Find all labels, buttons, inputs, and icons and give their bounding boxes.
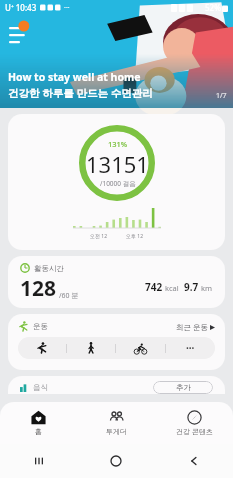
button[interactable]: 홈 — [0, 402, 77, 444]
staticText: 131% — [108, 139, 128, 149]
button[interactable]: 건강 콘텐츠 — [155, 402, 233, 444]
staticText: ··· — [64, 3, 70, 13]
staticText: 13151 — [86, 149, 149, 179]
button[interactable]: Back — [155, 444, 233, 478]
button[interactable]: Walk — [67, 337, 115, 359]
staticText: 건강 콘텐츠 — [176, 427, 213, 437]
staticText: kcal — [165, 283, 179, 293]
button[interactable]: Recents — [0, 444, 77, 478]
staticText: 오전 12 — [90, 233, 108, 240]
staticText: 1/7 — [216, 91, 227, 101]
button[interactable]: Cycle — [116, 337, 165, 359]
staticText: 최근 운동 — [176, 322, 208, 332]
staticText: 건강한 하루를 만드는 수면관리 — [8, 86, 153, 100]
staticText: 128 — [20, 274, 57, 303]
button[interactable]: 최근 운동 — [176, 322, 215, 332]
staticText: 투게더 — [106, 427, 127, 436]
staticText: 운동 — [33, 322, 48, 331]
button[interactable]: 추가 — [153, 381, 213, 394]
staticText: 742 — [145, 280, 163, 294]
button[interactable]: More — [166, 337, 215, 359]
staticText: 홈 — [35, 427, 42, 436]
button[interactable]: Home — [77, 444, 155, 478]
button[interactable]: 운동 — [8, 314, 225, 370]
staticText: 오후 12 — [126, 233, 144, 240]
staticText: U⁺ 10:43 — [5, 2, 37, 13]
button[interactable]: 음식 — [8, 376, 225, 394]
staticText: km — [201, 283, 213, 293]
staticText: How to stay well at home — [8, 70, 141, 84]
staticText: ··· — [186, 341, 195, 355]
button[interactable]: 활동시간 — [8, 256, 225, 308]
button[interactable]: 투게더 — [77, 402, 155, 444]
staticText: /60 분 — [59, 291, 79, 301]
staticText: /10000 걸음 — [100, 179, 136, 188]
staticText: 활동시간 — [34, 264, 64, 273]
staticText: 9.7 — [184, 280, 199, 294]
button[interactable]: Menu — [8, 20, 30, 42]
button[interactable]: 131% — [8, 114, 225, 250]
staticText: 음식 — [33, 383, 48, 392]
button[interactable]: Run — [18, 337, 66, 359]
staticText: 추가 — [176, 383, 191, 392]
staticText: 52% — [205, 2, 221, 13]
